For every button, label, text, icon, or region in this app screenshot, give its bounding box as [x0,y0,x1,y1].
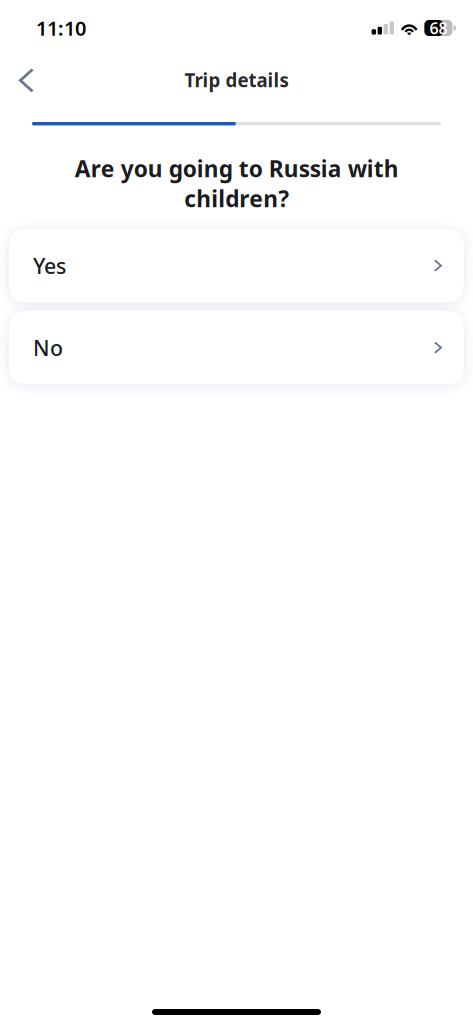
staticText: Are you going to Russia with children? [74,153,398,214]
staticText: No [33,333,63,362]
staticText: Trip details [184,68,288,92]
button[interactable]: No [9,311,464,385]
button[interactable]: Back [0,57,52,103]
staticText: 68 [429,17,447,39]
staticText: Yes [33,251,66,280]
staticText: 11:10 [36,15,86,41]
button[interactable]: Yes [9,229,464,303]
